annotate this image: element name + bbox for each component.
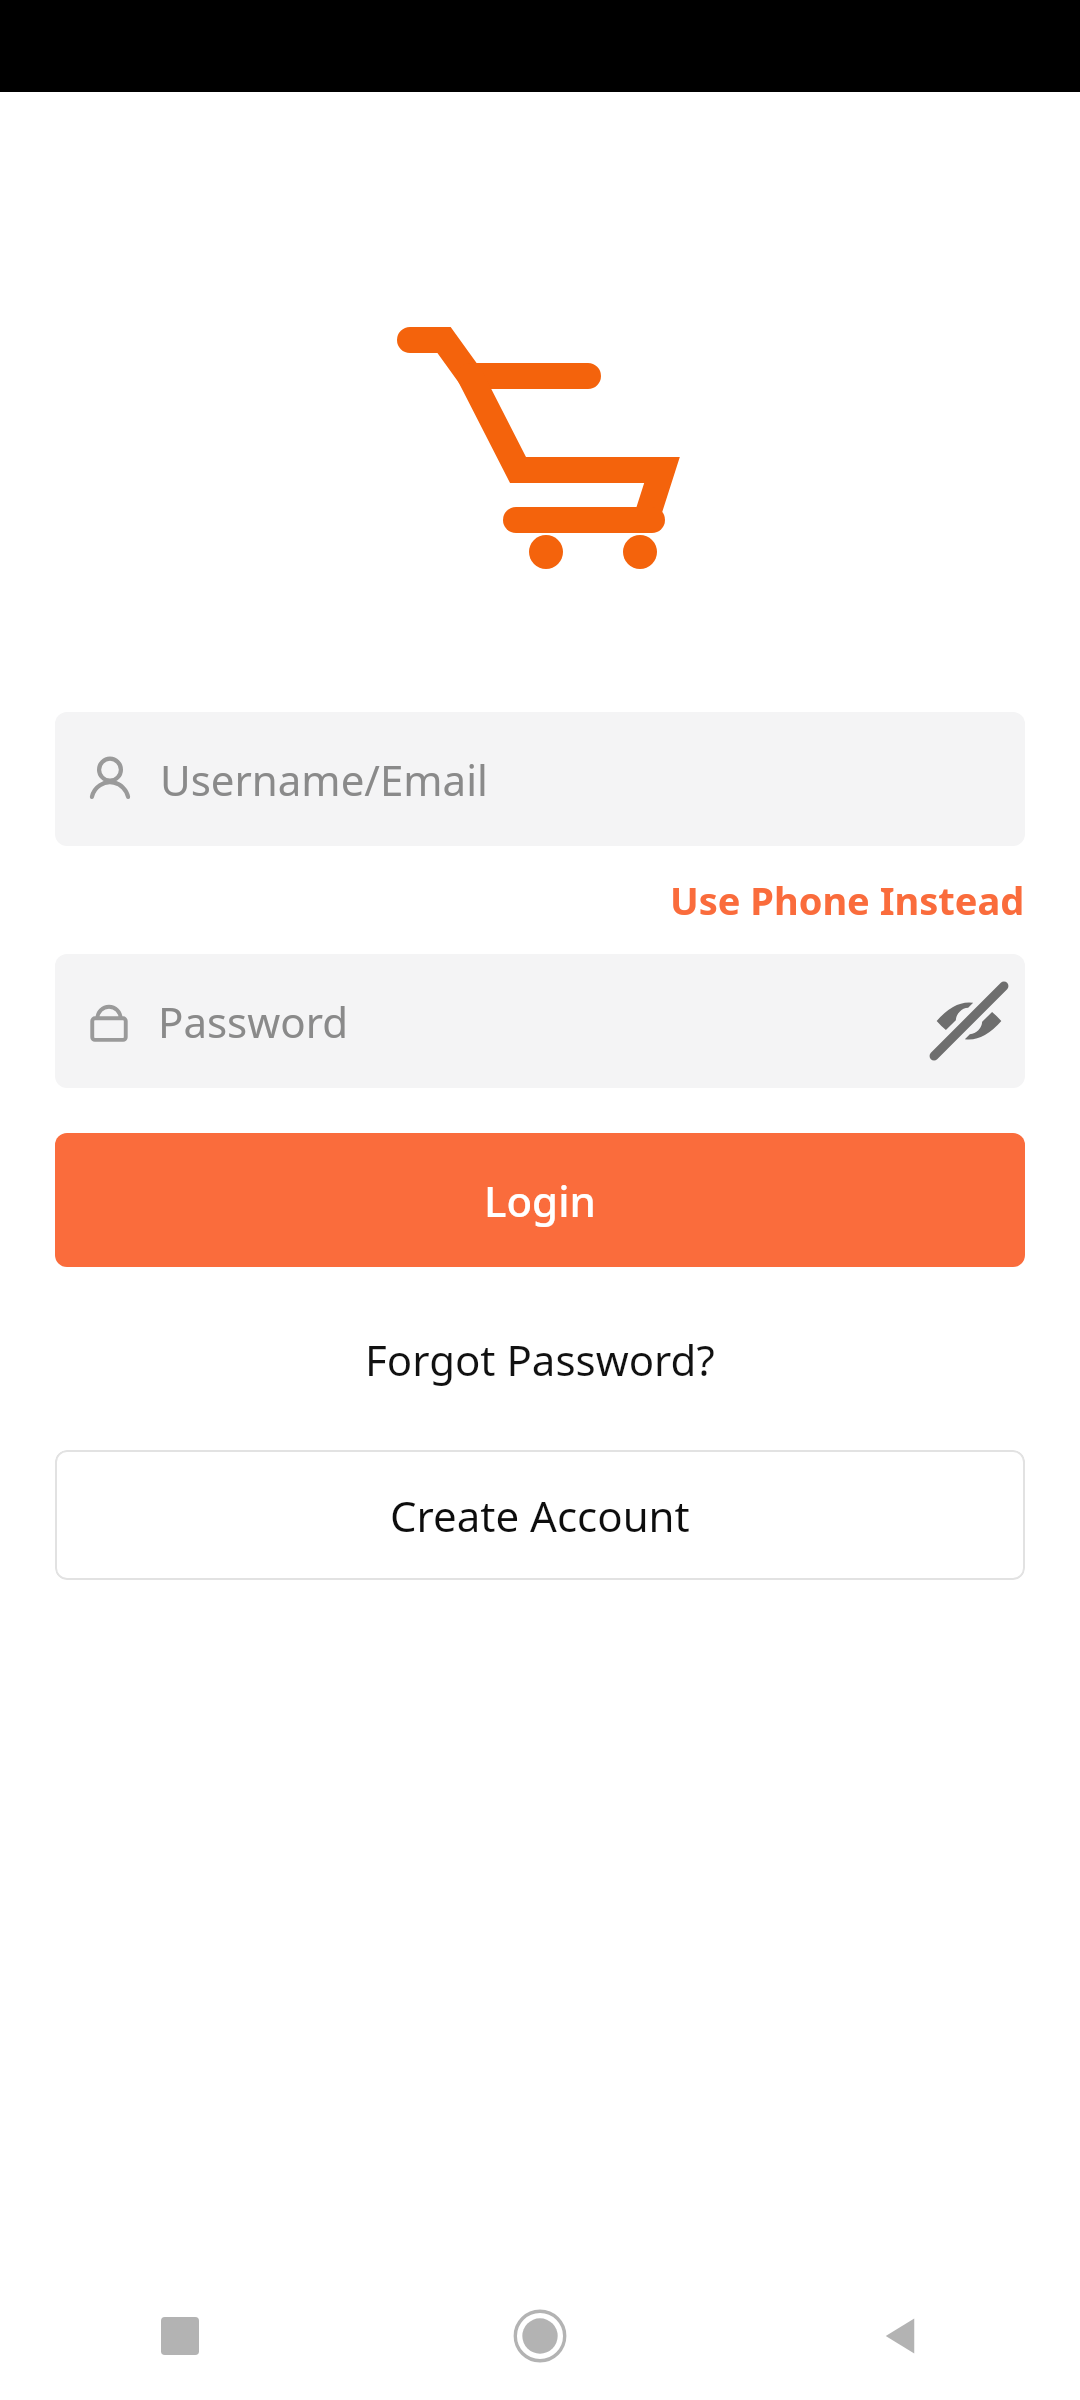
button[interactable]: Show password — [921, 973, 1017, 1069]
button[interactable]: Username/Email — [55, 712, 1025, 846]
button[interactable]: Recent apps — [0, 2272, 360, 2400]
button[interactable]: Home — [360, 2272, 720, 2400]
staticText: Login — [484, 1172, 596, 1229]
staticText: Forgot Password? — [365, 1331, 715, 1388]
staticText: Password — [158, 993, 348, 1050]
staticText: Use Phone Instead — [670, 874, 1025, 926]
button[interactable]: Use Phone Instead — [615, 870, 1080, 930]
button[interactable]: Back — [720, 2272, 1080, 2400]
button[interactable]: Create Account — [55, 1450, 1025, 1580]
staticText: Create Account — [390, 1487, 690, 1544]
button[interactable]: Forgot Password? — [345, 1325, 735, 1394]
button[interactable]: Password — [55, 954, 1025, 1088]
button[interactable]: Login — [55, 1133, 1025, 1267]
staticText: Username/Email — [160, 751, 488, 808]
